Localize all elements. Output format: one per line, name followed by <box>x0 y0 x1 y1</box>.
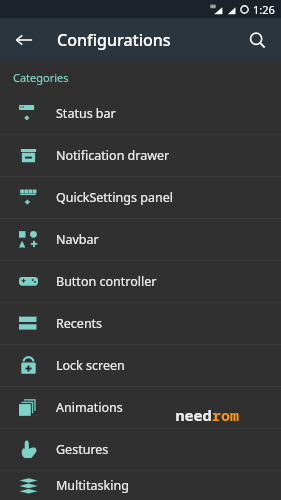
staticText: rom <box>212 405 240 425</box>
button[interactable]: Navbar <box>0 219 281 261</box>
button[interactable]: Multitasking <box>0 471 281 500</box>
staticText: Categories <box>13 70 69 85</box>
button[interactable]: Animations <box>0 387 281 429</box>
button[interactable]: Search <box>241 24 273 56</box>
staticText: Gestures <box>56 441 109 458</box>
button[interactable]: QuickSettings panel <box>0 177 281 219</box>
staticText: need <box>175 405 212 425</box>
staticText: QuickSettings panel <box>56 189 173 206</box>
staticText: Multitasking <box>56 477 129 494</box>
staticText: 1:26 <box>253 2 275 17</box>
button[interactable]: Notification drawer <box>0 135 281 177</box>
staticText: Recents <box>56 315 103 332</box>
button[interactable]: Lock screen <box>0 345 281 387</box>
staticText: Navbar <box>56 231 99 248</box>
staticText: Notification drawer <box>56 147 170 164</box>
staticText: Lock screen <box>56 357 125 374</box>
button[interactable]: Gestures <box>0 429 281 471</box>
button[interactable]: Back <box>8 24 40 56</box>
staticText: Configurations <box>57 29 171 51</box>
button[interactable]: Status bar <box>0 93 281 135</box>
button[interactable]: Recents <box>0 303 281 345</box>
button[interactable]: Button controller <box>0 261 281 303</box>
staticText: Button controller <box>56 273 157 290</box>
staticText: Animations <box>56 399 123 416</box>
staticText: Status bar <box>56 105 116 122</box>
